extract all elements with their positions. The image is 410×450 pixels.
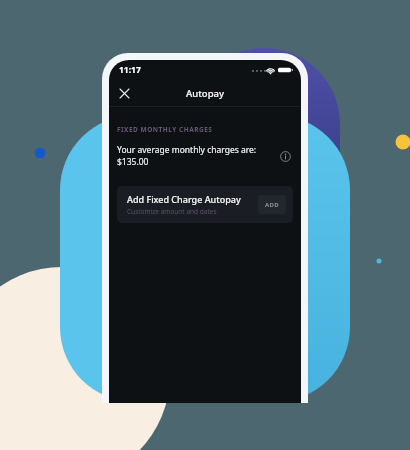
staticText: ADD [265,201,279,209]
staticText: Add Fixed Charge Autopay [127,193,241,205]
staticText: Autopay [186,87,224,100]
button[interactable]: More information [277,148,293,164]
staticText: 11:17 [119,64,141,76]
button[interactable]: Add Fixed Charge Autopay [117,186,293,223]
staticText: FIXED MONTHLY CHARGES [117,125,213,134]
button[interactable]: Close [113,82,135,104]
button[interactable]: ADD [258,195,286,214]
staticText: Customize amount and dates [127,207,217,216]
staticText: Your average monthly charges are: $135.0… [117,144,277,168]
